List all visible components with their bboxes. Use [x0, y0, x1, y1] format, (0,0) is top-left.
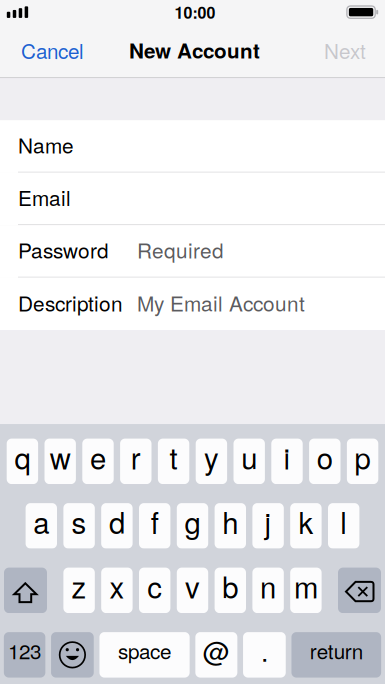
- button[interactable]: q: [7, 439, 38, 484]
- staticText: f: [151, 500, 159, 542]
- staticText: c: [147, 565, 162, 607]
- button[interactable]: m: [290, 568, 322, 613]
- button[interactable]: y: [196, 439, 227, 484]
- staticText: w: [50, 436, 71, 478]
- staticText: i: [283, 436, 290, 478]
- staticText: My Email Account: [137, 288, 305, 317]
- button[interactable]: r: [120, 439, 151, 484]
- button[interactable]: space: [99, 632, 190, 678]
- button[interactable]: Password: [0, 225, 385, 278]
- staticText: x: [109, 565, 124, 607]
- button[interactable]: Emoji: [51, 632, 94, 678]
- button[interactable]: Email: [0, 173, 385, 225]
- button[interactable]: p: [347, 439, 378, 484]
- button[interactable]: Next: [312, 28, 385, 72]
- staticText: 10:00: [174, 1, 215, 24]
- staticText: Name: [18, 130, 74, 159]
- button[interactable]: t: [158, 439, 189, 484]
- button[interactable]: Delete: [338, 568, 381, 613]
- button[interactable]: a: [26, 503, 57, 549]
- button[interactable]: 123: [4, 632, 45, 678]
- staticText: v: [185, 565, 200, 607]
- button[interactable]: s: [63, 503, 95, 549]
- staticText: space: [118, 636, 171, 665]
- staticText: n: [260, 565, 276, 607]
- button[interactable]: l: [328, 503, 359, 549]
- staticText: t: [170, 436, 178, 478]
- button[interactable]: v: [177, 568, 208, 613]
- button[interactable]: b: [215, 568, 246, 613]
- staticText: z: [72, 565, 87, 607]
- staticText: Description: [18, 288, 123, 317]
- button[interactable]: z: [63, 568, 95, 613]
- button[interactable]: o: [309, 439, 340, 484]
- button[interactable]: n: [252, 568, 284, 613]
- staticText: j: [265, 500, 272, 542]
- button[interactable]: f: [139, 503, 170, 549]
- staticText: d: [109, 500, 125, 542]
- staticText: e: [90, 436, 106, 478]
- staticText: r: [131, 436, 141, 478]
- button[interactable]: i: [271, 439, 303, 484]
- staticText: s: [72, 500, 87, 542]
- staticText: o: [317, 436, 333, 478]
- staticText: y: [204, 436, 219, 478]
- staticText: Required: [137, 235, 224, 264]
- staticText: u: [241, 436, 257, 478]
- staticText: g: [184, 500, 200, 542]
- button[interactable]: .: [243, 632, 286, 678]
- button[interactable]: w: [44, 439, 76, 484]
- button[interactable]: j: [252, 503, 284, 549]
- staticText: p: [355, 436, 371, 478]
- staticText: 123: [8, 636, 41, 665]
- button[interactable]: h: [215, 503, 246, 549]
- staticText: k: [298, 500, 313, 542]
- button[interactable]: d: [101, 503, 133, 549]
- staticText: return: [310, 636, 363, 665]
- staticText: m: [294, 565, 318, 607]
- staticText: a: [33, 500, 49, 542]
- button[interactable]: Name: [0, 120, 385, 173]
- button[interactable]: x: [101, 568, 133, 613]
- staticText: @: [203, 631, 230, 669]
- staticText: New Account: [129, 35, 260, 65]
- button[interactable]: k: [290, 503, 322, 549]
- staticText: Cancel: [21, 35, 84, 65]
- button[interactable]: c: [139, 568, 170, 613]
- staticText: h: [222, 500, 238, 542]
- button[interactable]: return: [291, 632, 381, 678]
- button[interactable]: @: [195, 632, 237, 678]
- staticText: b: [222, 565, 238, 607]
- staticText: q: [14, 436, 30, 478]
- button[interactable]: Description: [0, 278, 385, 330]
- staticText: Email: [18, 182, 71, 212]
- button[interactable]: Cancel: [0, 28, 96, 72]
- staticText: l: [340, 500, 347, 542]
- button[interactable]: u: [233, 439, 265, 484]
- button[interactable]: g: [177, 503, 208, 549]
- staticText: .: [261, 631, 268, 669]
- staticText: Password: [18, 235, 109, 264]
- button[interactable]: e: [82, 439, 114, 484]
- staticText: Next: [324, 35, 366, 65]
- button[interactable]: Shift: [4, 568, 47, 613]
